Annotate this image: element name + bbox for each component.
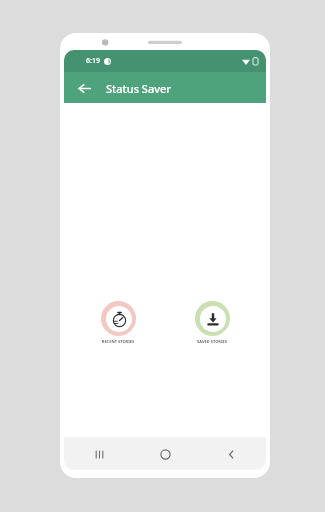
staticText: RECENT STORIES xyxy=(90,339,146,344)
button[interactable]: Home xyxy=(152,441,178,467)
button[interactable]: Back xyxy=(218,441,244,467)
staticText: 6:19 xyxy=(86,56,100,66)
button[interactable]: Back xyxy=(72,76,96,100)
button[interactable]: Recent stories xyxy=(90,301,146,344)
staticText: Status Saver xyxy=(106,81,171,96)
staticText: SAVED STORIES xyxy=(184,339,240,344)
button[interactable]: Saved stories xyxy=(184,301,240,344)
button[interactable]: Recents xyxy=(86,441,112,467)
